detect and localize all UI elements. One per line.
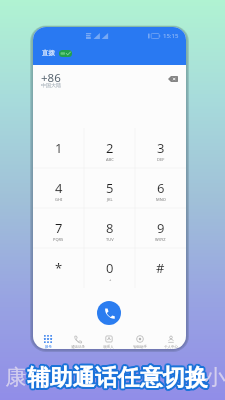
button[interactable]: 通话记录: [63, 332, 93, 349]
button[interactable]: *: [33, 251, 84, 291]
staticText: 个人中心: [164, 345, 178, 349]
staticText: #: [156, 259, 165, 277]
button[interactable]: Direct dial toggle: [59, 50, 72, 57]
button[interactable]: 智能助手: [124, 332, 155, 349]
button[interactable]: 6: [135, 171, 186, 211]
staticText: 0: [106, 259, 114, 277]
staticText: 通话记录: [71, 345, 85, 349]
staticText: GHI: [55, 197, 63, 202]
button[interactable]: 3: [135, 131, 186, 171]
staticText: 7: [55, 219, 63, 237]
staticText: 直拨: [42, 49, 55, 57]
staticText: MNO: [156, 197, 166, 202]
staticText: 6: [157, 179, 165, 197]
staticText: ABC: [106, 157, 114, 162]
button[interactable]: Backspace: [168, 76, 178, 82]
button[interactable]: 9: [135, 211, 186, 251]
staticText: 9: [157, 219, 165, 237]
button[interactable]: 拨号: [33, 332, 63, 349]
button[interactable]: 2: [84, 131, 135, 171]
staticText: *: [55, 259, 63, 277]
staticText: 2: [106, 139, 114, 157]
button[interactable]: #: [135, 251, 186, 291]
staticText: 中国大陆: [41, 82, 61, 88]
button[interactable]: 0: [84, 251, 135, 291]
button[interactable]: 个人中心: [155, 332, 186, 349]
staticText: DEF: [157, 157, 165, 162]
staticText: PQRS: [53, 237, 64, 242]
staticText: +86: [41, 70, 61, 86]
staticText: TUV: [106, 237, 114, 242]
staticText: 1: [55, 139, 63, 157]
button[interactable]: 7: [33, 211, 84, 251]
staticText: 联系人: [103, 345, 114, 349]
button[interactable]: 4: [33, 171, 84, 211]
button[interactable]: 8: [84, 211, 135, 251]
staticText: 8: [106, 219, 114, 237]
staticText: JKL: [107, 197, 113, 202]
staticText: 智能助手: [133, 345, 147, 349]
staticText: +: [109, 277, 112, 282]
staticText: WXYZ: [155, 237, 166, 242]
staticText: 4: [55, 179, 63, 197]
button[interactable]: 5: [84, 171, 135, 211]
button[interactable]: Call: [97, 301, 121, 325]
staticText: 5: [106, 179, 114, 197]
staticText: 拨号: [45, 345, 52, 349]
staticText: 15:15: [163, 32, 179, 40]
button[interactable]: 1: [33, 131, 84, 171]
button[interactable]: 联系人: [93, 332, 124, 349]
staticText: 3: [157, 139, 165, 157]
